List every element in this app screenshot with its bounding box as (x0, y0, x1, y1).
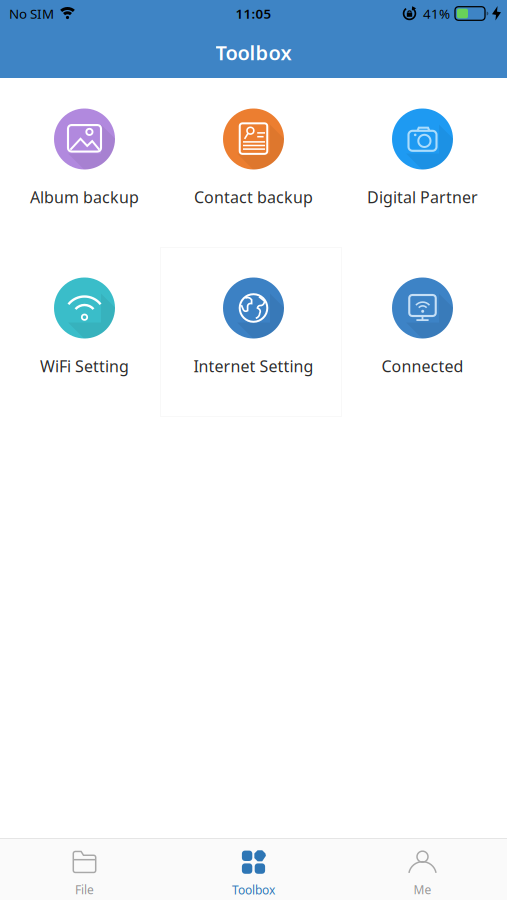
staticText: File (75, 882, 94, 898)
button[interactable]: File (0, 839, 169, 900)
staticText: Toolbox (232, 882, 275, 898)
staticText: Album backup (30, 186, 139, 208)
staticText: WiFi Setting (40, 355, 129, 377)
button[interactable]: Digital Partner (338, 78, 507, 247)
button[interactable]: WiFi Setting (0, 247, 169, 416)
button[interactable]: Internet Setting (169, 247, 338, 416)
button[interactable]: Me (338, 839, 507, 900)
staticText: Contact backup (194, 186, 313, 208)
staticText: Digital Partner (367, 186, 478, 208)
staticText: 11:05 (235, 5, 271, 22)
button[interactable]: Contact backup (169, 78, 338, 247)
staticText: No SIM (9, 5, 54, 22)
staticText: Me (413, 882, 431, 898)
staticText: Toolbox (215, 39, 291, 66)
button[interactable]: Connected (338, 247, 507, 416)
staticText: Internet Setting (193, 355, 313, 377)
button[interactable]: Album backup (0, 78, 169, 247)
staticText: 41% (423, 5, 450, 22)
button[interactable]: Toolbox (169, 839, 338, 900)
staticText: Connected (381, 355, 463, 377)
